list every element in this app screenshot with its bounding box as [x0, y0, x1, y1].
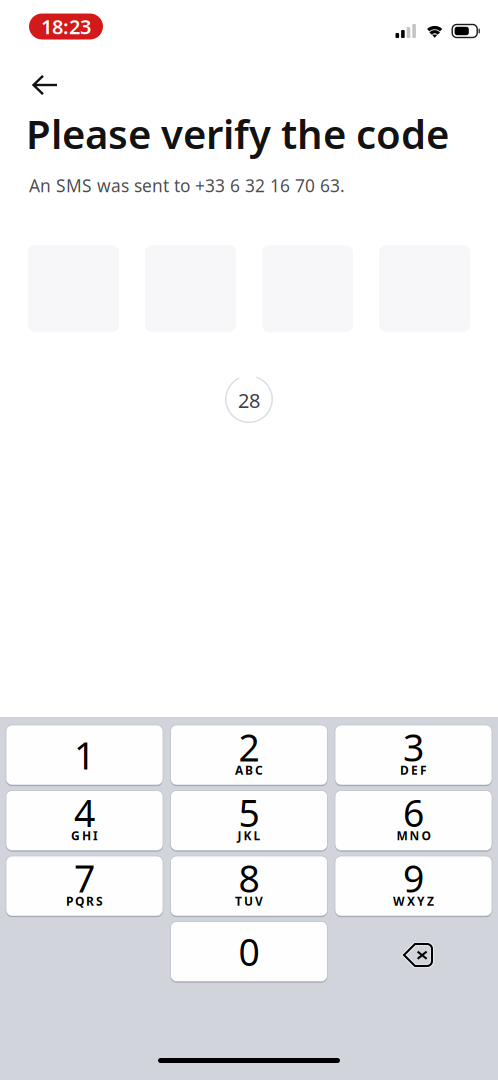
button[interactable]: Back [26, 69, 64, 101]
staticText: 2 [238, 722, 259, 772]
button[interactable]: 8 [170, 856, 327, 916]
staticText: 28 [238, 387, 260, 413]
button[interactable]: 4 [6, 790, 163, 850]
button[interactable]: 9 [335, 856, 492, 916]
staticText: Please verify the code [26, 107, 449, 160]
staticText: 7 [74, 853, 95, 903]
staticText: 6 [403, 788, 424, 837]
staticText: M N O [396, 827, 430, 843]
button[interactable]: Delete [335, 921, 492, 981]
staticText: W X Y Z [393, 893, 434, 909]
staticText: P Q R S [66, 893, 103, 909]
staticText: T U V [235, 893, 263, 909]
button[interactable]: 0 [170, 921, 327, 981]
staticText: 1 [74, 730, 95, 780]
button[interactable]: 6 [335, 790, 492, 850]
staticText: A B C [235, 762, 263, 778]
button[interactable]: 2 [170, 725, 327, 785]
staticText: 3 [403, 722, 424, 772]
staticText: 9 [403, 853, 424, 903]
button[interactable]: 1 [6, 725, 163, 785]
staticText: 5 [238, 788, 259, 837]
staticText: 18:23 [41, 13, 91, 40]
staticText: An SMS was sent to +33 6 32 16 70 63. [29, 174, 345, 197]
staticText: G H I [71, 827, 98, 843]
button[interactable]: 3 [335, 725, 492, 785]
staticText: 8 [238, 853, 259, 903]
staticText: 4 [74, 788, 95, 837]
button[interactable]: 7 [6, 856, 163, 916]
staticText: J K L [237, 827, 260, 843]
button[interactable]: 5 [170, 790, 327, 850]
staticText: 0 [238, 927, 259, 976]
staticText: D E F [400, 762, 427, 778]
